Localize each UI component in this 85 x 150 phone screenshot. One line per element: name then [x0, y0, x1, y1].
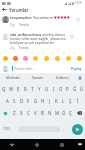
- button[interactable]: Voice input: [75, 73, 85, 83]
- button[interactable]: X: [18, 107, 25, 119]
- button[interactable]: C: [25, 107, 32, 119]
- button[interactable]: Paylaş: [71, 66, 82, 71]
- button[interactable]: [52, 54, 63, 63]
- button[interactable]: Backspace: [74, 107, 85, 119]
- button[interactable]: [41, 54, 52, 63]
- button[interactable]: R: [22, 83, 29, 95]
- staticText: A: [6, 98, 9, 104]
- button[interactable]: Ö: [60, 107, 67, 119]
- staticText: Yanıtla: [19, 46, 29, 50]
- button[interactable]: Yanıtla: [19, 46, 29, 50]
- button[interactable]: Ü: [78, 83, 85, 95]
- staticText: Q: [2, 86, 6, 92]
- button[interactable]: G: [32, 95, 39, 107]
- button[interactable]: Z: [11, 107, 18, 119]
- button[interactable]: Ç: [67, 107, 74, 119]
- staticText: 100%: [75, 1, 83, 5]
- staticText: J: [49, 98, 51, 104]
- button[interactable]: W: [8, 83, 15, 95]
- button[interactable]: [20, 54, 30, 63]
- staticText: 2 g: [10, 46, 15, 50]
- button[interactable]: Hide keyboard: [74, 139, 85, 150]
- staticText: Ö: [62, 110, 66, 116]
- staticText: N: [48, 110, 52, 116]
- staticText: X: [20, 110, 23, 116]
- staticText: Y: [38, 86, 41, 92]
- staticText: O: [59, 86, 63, 92]
- button[interactable]: B: [39, 107, 46, 119]
- staticText: M: [55, 110, 59, 116]
- button[interactable]: [74, 54, 85, 63]
- staticText: Yanıtla: [19, 23, 29, 27]
- button[interactable]: T: [29, 83, 36, 95]
- button[interactable]: Shift: [0, 107, 11, 119]
- button[interactable]: [0, 54, 10, 63]
- button[interactable]: İ: [74, 95, 81, 107]
- staticText: H: [41, 98, 45, 104]
- button[interactable]: Tamam: [25, 73, 50, 83]
- staticText: G: [34, 98, 38, 104]
- staticText: ?123: [3, 127, 10, 131]
- staticText: R: [24, 86, 27, 92]
- button[interactable]: V: [32, 107, 39, 119]
- staticText: T: [31, 86, 34, 92]
- staticText: Tamam: [32, 76, 44, 80]
- button[interactable]: [10, 54, 20, 63]
- button[interactable]: D: [18, 95, 25, 107]
- staticText: Ğ: [73, 86, 77, 92]
- button[interactable]: J: [46, 95, 53, 107]
- staticText: W: [9, 86, 14, 92]
- button[interactable]: Send: [72, 124, 83, 135]
- button[interactable]: Q: [0, 83, 8, 95]
- staticText: 3 g: [10, 23, 15, 27]
- button[interactable]: Home: [24, 139, 49, 150]
- button[interactable]: Like comment: [75, 17, 81, 23]
- button[interactable]: Kullanıcı: [50, 73, 75, 83]
- button[interactable]: Y: [36, 83, 43, 95]
- staticText: S: [13, 98, 16, 104]
- button[interactable]: Ğ: [71, 83, 78, 95]
- staticText: eceyavuzkoc Yorumlarım ♥♥♥♥♥: [10, 15, 70, 20]
- button[interactable]: ?123: [0, 119, 13, 139]
- staticText: Kullanıcı: [56, 76, 69, 80]
- staticText: Ç: [69, 110, 72, 116]
- button[interactable]: U: [43, 83, 50, 95]
- staticText: Yorumlar: [9, 7, 29, 13]
- button[interactable]: M: [53, 107, 60, 119]
- staticText: Ş: [69, 98, 72, 104]
- staticText: D: [20, 98, 24, 104]
- staticText: .: [63, 126, 65, 132]
- staticText: U: [45, 86, 49, 92]
- staticText: E: [17, 86, 20, 92]
- button[interactable]: A: [4, 95, 11, 107]
- button[interactable]: K: [53, 95, 60, 107]
- button[interactable]: O: [57, 83, 64, 95]
- staticText: İ: [77, 98, 79, 104]
- button[interactable]: Like comment: [69, 34, 75, 40]
- staticText: C: [27, 110, 30, 116]
- staticText: I: [53, 86, 55, 92]
- button[interactable]: S: [11, 95, 18, 107]
- button[interactable]: P: [64, 83, 71, 95]
- button[interactable]: Ş: [67, 95, 74, 107]
- button[interactable]: L: [60, 95, 67, 107]
- button[interactable]: Yanıtla: [19, 23, 29, 27]
- button[interactable]: E: [15, 83, 22, 95]
- button[interactable]: Recents: [49, 139, 74, 150]
- button[interactable]: .: [60, 119, 67, 139]
- staticText: Ü: [80, 86, 84, 92]
- button[interactable]: [30, 54, 41, 63]
- button[interactable]: Back: [0, 6, 9, 13]
- button[interactable]: [63, 54, 74, 63]
- button[interactable]: N: [46, 107, 53, 119]
- staticText: Yorum ekle...: [14, 66, 35, 71]
- button[interactable]: I: [50, 83, 57, 95]
- button[interactable]: F: [25, 95, 32, 107]
- button[interactable]: Back: [0, 139, 24, 150]
- button[interactable]: H: [39, 95, 46, 107]
- staticText: P: [66, 86, 69, 92]
- staticText: eda_arifoncuhoca müthiş olmuş hocam elle…: [10, 32, 76, 45]
- button[interactable]: Merhaba: [0, 73, 25, 83]
- staticText: Merhaba: [6, 76, 20, 80]
